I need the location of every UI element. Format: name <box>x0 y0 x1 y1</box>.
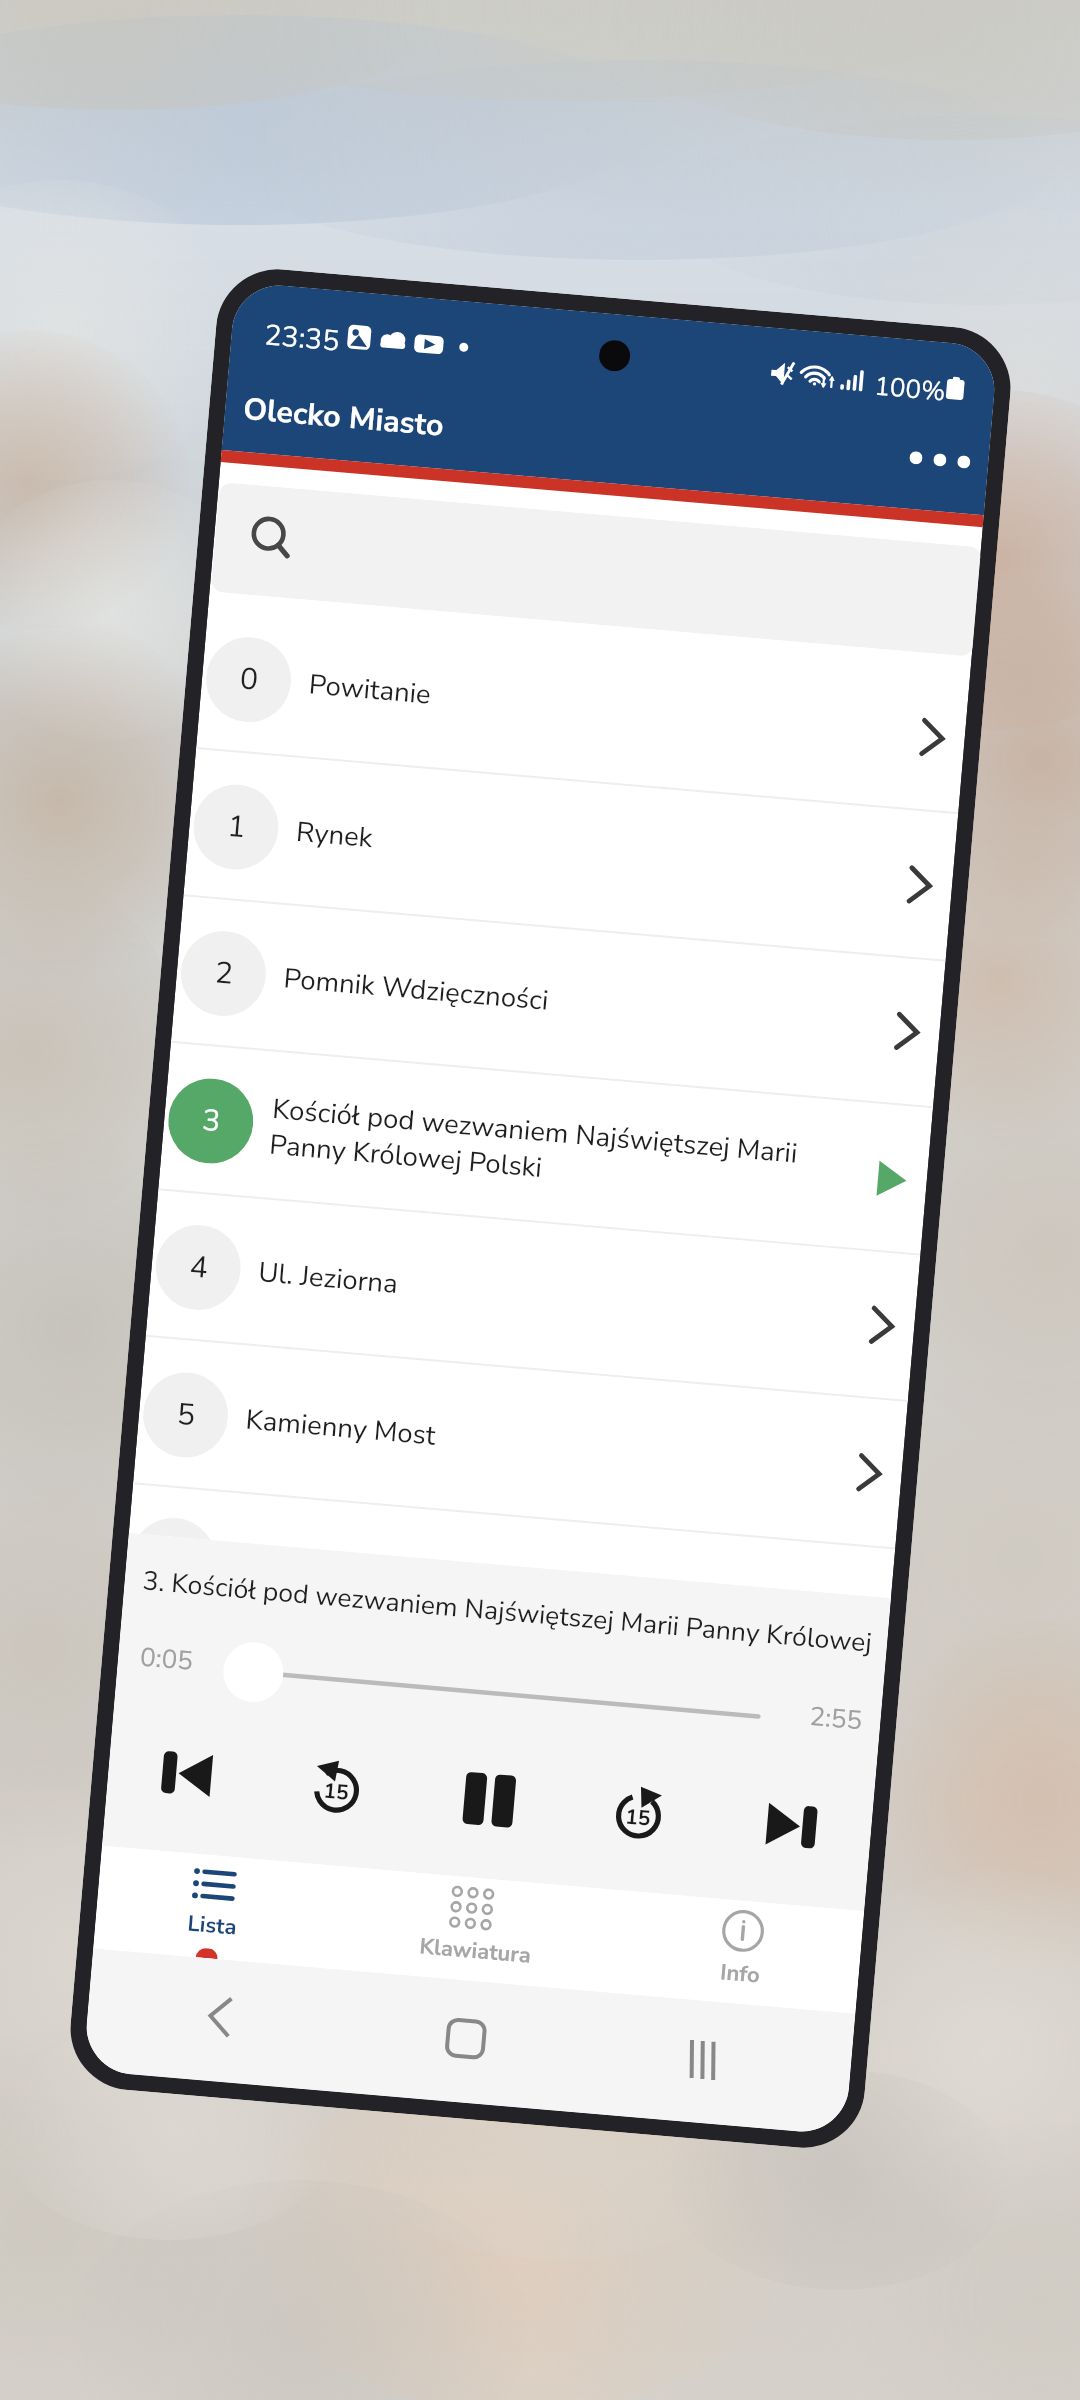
staticText: Kamienny Most <box>244 1401 815 1487</box>
staticText: 15 <box>624 1802 652 1834</box>
staticText: 1 <box>226 806 247 848</box>
button[interactable]: 5 <box>133 1337 908 1549</box>
button[interactable]: Forward 15 seconds <box>600 1774 678 1852</box>
staticText: 3. Kościół pod wezwaniem Najświętszej Ma… <box>141 1562 874 1661</box>
button[interactable]: Info <box>661 1895 829 2011</box>
staticText: Lista <box>186 1908 239 1943</box>
button[interactable]: Search <box>210 482 981 657</box>
button[interactable]: 3 <box>158 1043 933 1256</box>
button[interactable]: Lista <box>135 1849 303 1966</box>
button[interactable]: 1 <box>183 749 958 962</box>
button[interactable]: Rewind 15 seconds <box>298 1748 376 1826</box>
other: Back <box>206 1995 236 2039</box>
staticText: Kościół pod wezwaniem Najświętszej Marii… <box>268 1090 842 1211</box>
staticText: Info <box>719 1957 761 1990</box>
button[interactable]: 2 <box>171 895 946 1108</box>
button[interactable]: Klawiatura <box>372 1870 580 1989</box>
staticText: 2 <box>213 952 235 995</box>
button[interactable]: Next <box>752 1787 830 1865</box>
button[interactable]: 0 <box>196 601 971 814</box>
staticText: Powitanie <box>307 665 878 752</box>
staticText: Rynek <box>295 813 866 899</box>
staticText: 4 <box>188 1246 209 1289</box>
staticText: Pomnik Wdzięczności <box>282 959 853 1046</box>
button[interactable]: 4 <box>146 1189 920 1402</box>
button[interactable]: Previous <box>147 1735 225 1813</box>
staticText: Klawiatura <box>418 1931 532 1971</box>
staticText: 0:05 <box>139 1639 194 1679</box>
staticText: 5 <box>175 1394 197 1436</box>
button[interactable]: Pause <box>450 1761 528 1839</box>
staticText: 15 <box>322 1777 351 1808</box>
staticText: 100% <box>873 369 947 405</box>
other: Recents <box>682 2039 721 2080</box>
staticText: 0 <box>238 658 260 701</box>
staticText: Ul. Jeziorna <box>257 1253 828 1340</box>
staticText: Olecko Miasto <box>241 388 446 447</box>
staticText: 23:35 <box>263 315 341 361</box>
other: Home <box>446 2019 485 2058</box>
staticText: 2:55 <box>808 1699 864 1738</box>
staticText: 3 <box>200 1100 222 1142</box>
button[interactable]: More options <box>902 438 978 481</box>
